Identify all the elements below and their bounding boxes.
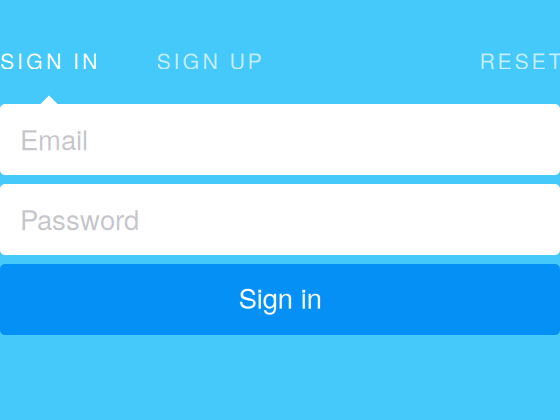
staticText: Email [20, 119, 88, 158]
button[interactable]: RESET PASSWORD [479, 39, 560, 81]
staticText: Sign in [238, 277, 321, 317]
button[interactable]: SIGN UP [156, 39, 261, 81]
staticText: SIGN IN [0, 45, 97, 75]
button[interactable]: Sign in [0, 264, 560, 335]
staticText: RESET PASSWORD [479, 45, 560, 75]
staticText: Password [20, 199, 139, 238]
button[interactable]: SIGN IN [0, 39, 97, 81]
button[interactable]: Password [0, 184, 560, 255]
button[interactable]: Email [0, 104, 560, 175]
staticText: SIGN UP [156, 45, 261, 75]
